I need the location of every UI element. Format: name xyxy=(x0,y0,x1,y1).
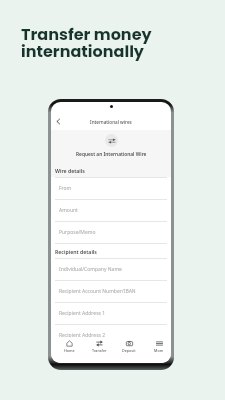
staticText: Transfer xyxy=(92,348,107,353)
staticText: Amount xyxy=(59,207,78,214)
button[interactable]: Deposit xyxy=(117,340,141,353)
staticText: Purpose/Memo xyxy=(59,229,96,236)
staticText: internationally xyxy=(21,40,144,62)
staticText: From xyxy=(59,185,72,192)
staticText: Recipient Account Number/IBAN xyxy=(59,288,136,295)
staticText: Recipient Address 1 xyxy=(59,310,106,317)
staticText: Transfer money xyxy=(21,23,152,45)
button[interactable]: Back xyxy=(53,116,64,127)
button[interactable]: Recipient Address 2 xyxy=(51,325,171,347)
staticText: Home xyxy=(64,348,75,353)
button[interactable]: Transfer xyxy=(87,340,111,353)
staticText: International wires xyxy=(90,119,132,125)
button[interactable]: Purpose/Memo xyxy=(51,222,171,244)
button[interactable]: Recipient Account Number/IBAN xyxy=(51,281,171,303)
button[interactable]: Recipient Address 1 xyxy=(51,303,171,325)
button[interactable]: From xyxy=(51,178,171,200)
staticText: Recipient Address 2 xyxy=(59,332,106,339)
staticText: Recipient details xyxy=(55,248,97,255)
staticText: Individual/Company Name xyxy=(59,266,122,273)
staticText: Request an International Wire xyxy=(76,151,147,158)
staticText: Deposit xyxy=(122,348,136,353)
button[interactable]: More xyxy=(147,340,171,353)
button[interactable]: Individual/Company Name xyxy=(51,259,171,281)
button[interactable]: Home xyxy=(57,340,81,353)
staticText: More xyxy=(154,348,164,353)
button[interactable]: Amount xyxy=(51,200,171,222)
staticText: Wire details xyxy=(55,167,85,174)
